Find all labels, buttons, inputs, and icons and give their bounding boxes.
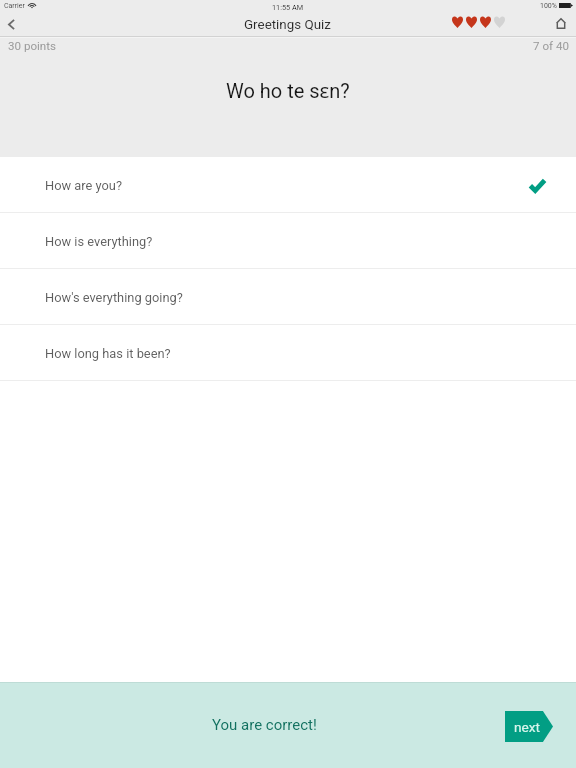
button[interactable]: How's everything going? (0, 269, 576, 325)
staticText: You are correct! (212, 716, 317, 734)
staticText: Carrier (4, 2, 25, 10)
button[interactable]: How long has it been? (0, 325, 576, 381)
button[interactable]: How is everything? (0, 213, 576, 269)
staticText: How long has it been? (45, 346, 171, 361)
staticText: How is everything? (45, 234, 153, 249)
staticText: 100% (540, 2, 557, 10)
button[interactable]: How are you? (0, 157, 576, 213)
staticText: 30 points (8, 39, 57, 53)
button[interactable]: Back (0, 20, 40, 57)
staticText: How are you? (45, 178, 122, 193)
button[interactable]: Home (546, 20, 576, 57)
button[interactable]: next (505, 711, 553, 742)
staticText: 11:55 AM (272, 3, 304, 12)
staticText: 7 of 40 (533, 39, 569, 53)
staticText: next (514, 719, 541, 735)
staticText: Wo ho te sɛn? (226, 77, 350, 104)
staticText: How's everything going? (45, 290, 183, 305)
staticText: Greetings Quiz (244, 17, 332, 33)
